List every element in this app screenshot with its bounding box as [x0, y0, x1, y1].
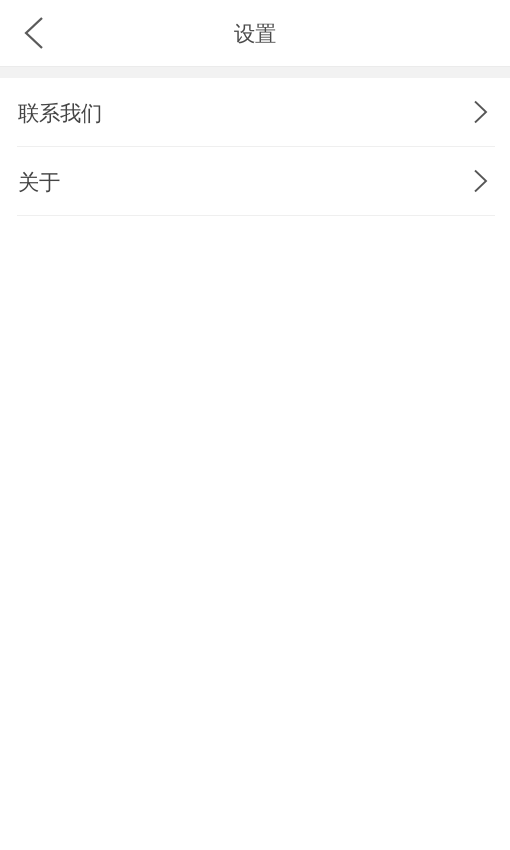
button[interactable]: 联系我们 [0, 78, 510, 147]
button[interactable]: Back [0, 6, 62, 60]
button[interactable]: 关于 [0, 147, 510, 216]
staticText: 联系我们 [18, 100, 102, 127]
staticText: 设置 [234, 21, 276, 47]
staticText: 关于 [18, 169, 60, 196]
